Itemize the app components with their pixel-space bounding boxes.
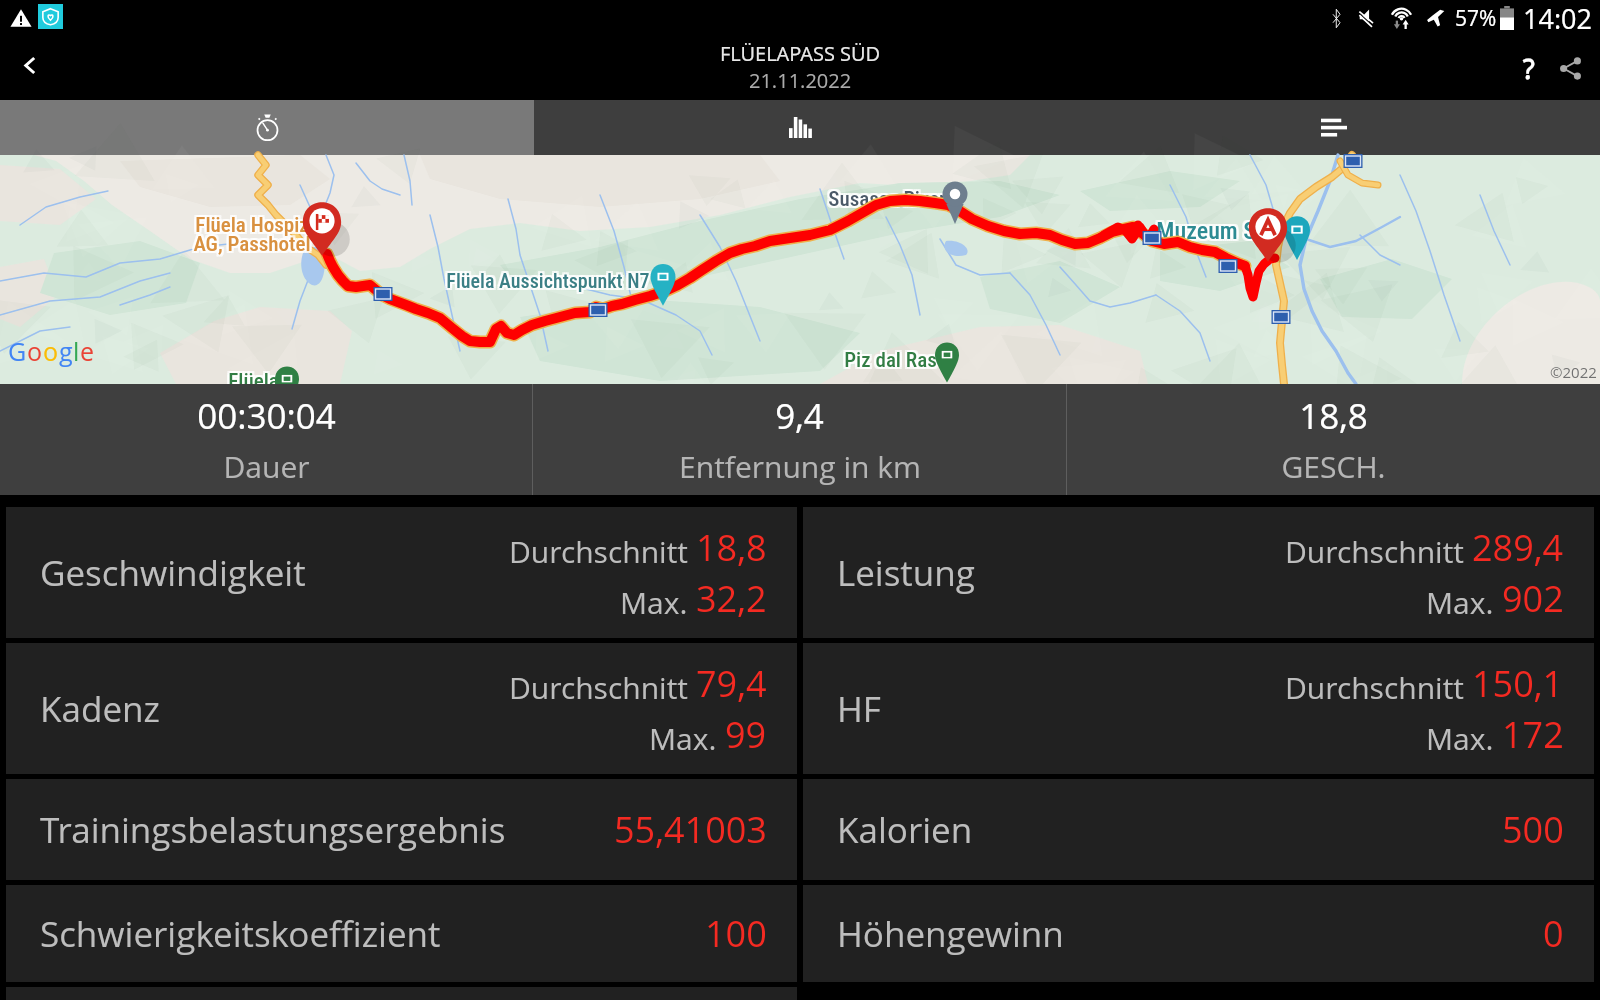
staticText: Flüela Hospiz (197, 211, 311, 236)
staticText: Muzeum Su (1158, 217, 1270, 245)
staticText: Susasca River (826, 187, 944, 212)
button[interactable]: Charts (534, 100, 1067, 155)
staticText: ? (1523, 50, 1535, 87)
staticText: Piz dal Ras (846, 348, 939, 373)
staticText: Durchschnitt (509, 667, 696, 708)
staticText: Flüela Hospiz (197, 213, 311, 238)
staticText: Flüela Hospiz (193, 211, 307, 236)
staticText: Susasca River (826, 189, 944, 214)
staticText: Flüela (230, 369, 281, 394)
button[interactable]: Geschwindigkeit (6, 507, 797, 638)
staticText: Flüela Aussichtspunkt N7 (446, 267, 650, 290)
staticText: Muzeum Su (1154, 219, 1266, 247)
button[interactable]: Höhengewinn (803, 885, 1594, 982)
button[interactable]: Trainingsbelastungsergebnis (6, 779, 797, 880)
staticText: AG, Passhotel (191, 234, 309, 259)
staticText: Max. (1426, 582, 1502, 623)
button[interactable]: Schwierigkeitskoeffizient (6, 885, 797, 982)
button[interactable]: 9,4 (533, 384, 1066, 495)
staticText: Dauer (223, 446, 310, 487)
button[interactable]: HF (803, 643, 1594, 774)
staticText: Piz dal Ras (842, 346, 935, 371)
button[interactable]: 00:30:04 (0, 384, 532, 495)
staticText: Höhengewinn (837, 910, 1064, 958)
staticText: 100 (705, 909, 767, 958)
staticText: Susasca River (830, 187, 948, 212)
staticText: Piz dal Ras (844, 346, 937, 371)
staticText: Susasca River (828, 185, 946, 210)
staticText: Piz dal Ras (842, 350, 935, 375)
staticText: o (43, 334, 59, 368)
staticText: 9,4 (775, 392, 824, 440)
staticText: AG, Passhotel (195, 234, 313, 259)
staticText: G (8, 334, 27, 368)
button[interactable]: Help (1502, 38, 1556, 98)
staticText: Piz dal Ras (846, 346, 939, 371)
staticText: e (80, 334, 95, 368)
staticText: l (73, 334, 80, 368)
button[interactable]: Kadenz (6, 643, 797, 774)
staticText: Susasca River (830, 189, 948, 214)
staticText: GESCH. (1281, 446, 1386, 487)
staticText: 55,41003 (614, 805, 767, 854)
staticText: Muzeum Su (1156, 219, 1268, 247)
staticText: 79,4 (696, 659, 767, 708)
staticText: Durchschnitt (1285, 667, 1472, 708)
button[interactable]: Leistung (803, 507, 1594, 638)
staticText: Flüela (228, 371, 279, 396)
staticText: HF (837, 685, 881, 733)
staticText: Schwierigkeitskoeffizient (40, 910, 441, 958)
button[interactable]: Kalorien (803, 779, 1594, 880)
staticText: o (27, 334, 43, 368)
staticText: Flüela Aussichtspunkt N7 (448, 267, 652, 290)
staticText: Flüela Hospiz (195, 215, 309, 240)
staticText: Flüela Hospiz (195, 211, 309, 236)
staticText: 172 (1502, 710, 1564, 759)
button[interactable]: 18,8 (1067, 384, 1600, 495)
staticText: Flüela Aussichtspunkt N7 (448, 269, 652, 292)
staticText: FLÜELAPASS SÜD (720, 40, 881, 67)
staticText: 18,8 (1299, 392, 1368, 440)
staticText: 57% (1455, 4, 1497, 33)
button[interactable]: Share (1543, 38, 1597, 98)
staticText: Susasca River (828, 189, 946, 214)
staticText: Flüela Hospiz (197, 215, 311, 240)
staticText: Muzeum Su (1158, 215, 1270, 243)
staticText: Flüela (228, 367, 279, 392)
staticText: Max. (620, 582, 696, 623)
button[interactable]: Laps (1067, 100, 1600, 155)
staticText: 289,4 (1472, 523, 1564, 572)
staticText: 21.11.2022 (749, 67, 852, 94)
staticText: Flüela (226, 367, 277, 392)
staticText: AG, Passhotel (191, 230, 309, 255)
staticText: AG, Passhotel (193, 232, 311, 257)
staticText: AG, Passhotel (193, 230, 311, 255)
staticText: ©2022 (1550, 362, 1597, 382)
staticText: Flüela Aussichtspunkt N7 (446, 269, 650, 292)
staticText: Kalorien (837, 806, 973, 854)
staticText: Piz dal Ras (844, 350, 937, 375)
staticText: Piz dal Ras (846, 350, 939, 375)
staticText: Durchschnitt (509, 531, 696, 572)
staticText: Muzeum Su (1154, 215, 1266, 243)
staticText: Flüela Aussichtspunkt N7 (444, 267, 648, 290)
staticText: Entfernung in km (679, 446, 921, 487)
staticText: Kadenz (40, 685, 160, 733)
staticText: AG, Passhotel (195, 230, 313, 255)
staticText: Leistung (837, 549, 975, 597)
staticText: 99 (725, 710, 767, 759)
staticText: Piz dal Ras (842, 348, 935, 373)
staticText: Flüela (228, 369, 279, 394)
staticText: Susasca River (830, 185, 948, 210)
staticText: Flüela Aussichtspunkt N7 (446, 271, 650, 294)
staticText: Muzeum Su (1156, 217, 1268, 245)
staticText: Susasca River (826, 185, 944, 210)
staticText: 150,1 (1472, 659, 1564, 708)
staticText: Max. (1426, 718, 1502, 759)
staticText: Flüela Hospiz (193, 213, 307, 238)
button[interactable]: Summary (0, 100, 534, 155)
staticText: Piz dal Ras (844, 348, 937, 373)
staticText: Flüela Hospiz (195, 213, 309, 238)
button[interactable]: Back (1, 36, 59, 94)
